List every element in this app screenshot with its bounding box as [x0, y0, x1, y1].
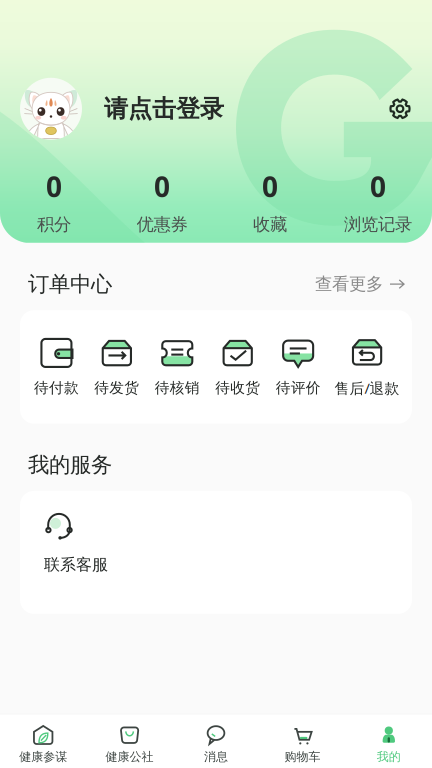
staticText: 优惠券 [136, 214, 187, 235]
button[interactable]: 我的 [346, 724, 432, 764]
staticText: 消息 [204, 749, 228, 764]
staticText: 订单中心 [28, 271, 112, 297]
button[interactable]: 待评价 [274, 339, 322, 397]
staticText: 待核销 [155, 379, 200, 397]
button[interactable]: 待核销 [153, 339, 201, 397]
button[interactable]: 健康公社 [86, 724, 173, 764]
staticText: 售后/退款 [335, 378, 400, 398]
staticText: 0 [262, 168, 278, 205]
staticText: 联系客服 [44, 555, 108, 575]
button[interactable]: 售后/退款 [335, 338, 400, 398]
staticText: 待付款 [34, 379, 79, 397]
staticText: 待收货 [215, 379, 260, 397]
staticText: 待评价 [276, 379, 321, 397]
button[interactable]: 0 [0, 168, 108, 235]
button[interactable]: 0 [216, 168, 324, 235]
button[interactable]: 健康参谋 [0, 724, 86, 764]
staticText: 积分 [37, 214, 71, 235]
button[interactable]: 查看更多 [315, 273, 404, 295]
staticText: 浏览记录 [344, 214, 412, 235]
staticText: 0 [46, 168, 62, 205]
button[interactable]: 购物车 [259, 724, 346, 764]
staticText: 我的服务 [28, 452, 112, 478]
button[interactable]: 待收货 [214, 339, 262, 397]
staticText: 0 [154, 168, 170, 205]
staticText: 我的 [377, 749, 401, 764]
button[interactable]: 消息 [173, 724, 259, 764]
staticText: 查看更多 [315, 273, 383, 295]
staticText: 0 [370, 168, 386, 205]
staticText: 请点击登录 [104, 94, 224, 123]
button[interactable]: 待付款 [32, 339, 80, 397]
button[interactable]: 0 [108, 168, 216, 235]
staticText: 购物车 [284, 749, 320, 764]
staticText: 健康公社 [106, 749, 154, 764]
staticText: 收藏 [253, 214, 287, 235]
staticText: 待发货 [94, 379, 139, 397]
button[interactable]: 0 [324, 168, 432, 235]
staticText: 健康参谋 [19, 749, 67, 764]
button[interactable]: Settings [383, 92, 417, 126]
button[interactable]: 待发货 [93, 339, 141, 397]
button[interactable]: 联系客服 [20, 491, 108, 575]
